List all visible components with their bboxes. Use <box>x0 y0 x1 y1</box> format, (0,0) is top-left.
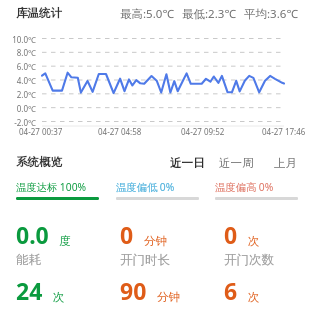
button[interactable]: 上月 <box>267 149 304 177</box>
button[interactable]: 温度偏高 0% <box>215 179 301 200</box>
staticText: 次 <box>248 290 260 304</box>
button[interactable]: 90 <box>120 275 212 306</box>
button[interactable]: 6 <box>224 275 313 306</box>
staticText: 6.0℃ <box>0 61 36 72</box>
staticText: 90 <box>120 275 147 306</box>
staticText: 24 <box>16 275 43 306</box>
staticText: 2.0℃ <box>0 89 36 100</box>
button[interactable]: 温度偏低 0% <box>116 179 202 200</box>
staticText: 0 <box>120 219 134 250</box>
staticText: 4.0℃ <box>0 75 36 86</box>
staticText: 近一周 <box>219 156 254 170</box>
staticText: 次 <box>53 290 65 304</box>
staticText: -2.0℃ <box>0 117 36 128</box>
staticText: 开门时长 <box>120 252 170 268</box>
button[interactable]: 24 <box>16 275 108 306</box>
staticText: 温度达标 100% <box>16 180 87 194</box>
staticText: 最低:2.3℃ <box>182 6 236 22</box>
button[interactable]: 近一日 <box>163 149 212 177</box>
button[interactable]: 温度达标 100% <box>16 179 102 200</box>
button[interactable]: 0 <box>120 219 212 268</box>
staticText: 分钟 <box>144 234 167 248</box>
button[interactable]: 0.0 <box>16 219 108 268</box>
staticText: 04-27 04:58 <box>98 126 142 137</box>
staticText: 库温统计 <box>16 6 62 20</box>
staticText: 最高:5.0℃ <box>120 6 174 22</box>
staticText: 系统概览 <box>16 155 62 169</box>
staticText: 04-27 09:52 <box>181 126 225 137</box>
staticText: 温度偏低 0% <box>116 180 175 194</box>
staticText: 次 <box>248 234 260 248</box>
staticText: 分钟 <box>157 290 180 304</box>
staticText: 度 <box>59 234 71 248</box>
button[interactable]: 0 <box>224 219 313 268</box>
staticText: 上月 <box>274 156 297 170</box>
staticText: 近一日 <box>170 156 205 170</box>
staticText: 0.0 <box>16 219 49 250</box>
staticText: 6 <box>224 275 238 306</box>
staticText: 0.0℃ <box>0 103 36 114</box>
staticText: 04-27 00:37 <box>19 126 63 137</box>
staticText: 平均:3.6℃ <box>244 6 298 22</box>
staticText: 能耗 <box>16 252 41 268</box>
button[interactable]: 近一周 <box>212 149 261 177</box>
staticText: 10.0℃ <box>0 34 36 45</box>
staticText: 0 <box>224 219 238 250</box>
staticText: 04-27 17:46 <box>262 126 306 137</box>
staticText: 8.0℃ <box>0 47 36 58</box>
staticText: 温度偏高 0% <box>215 180 274 194</box>
staticText: 开门次数 <box>224 252 274 268</box>
